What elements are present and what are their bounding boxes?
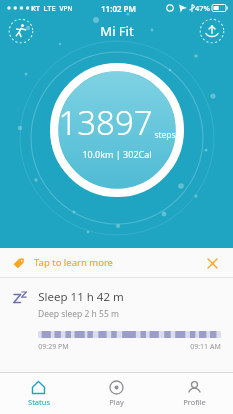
button[interactable]: Share xyxy=(199,18,225,44)
button[interactable]: Tap to learn more xyxy=(0,248,233,277)
button[interactable]: Start workout xyxy=(8,18,34,44)
button[interactable]: Sleep 11 h 42 m xyxy=(0,278,233,364)
staticText: 11:02 PM xyxy=(101,3,136,14)
staticText: Deep sleep 2 h 55 m xyxy=(38,308,119,320)
staticText: Tap to learn more xyxy=(34,256,113,269)
staticText: 13897 xyxy=(58,100,153,145)
button[interactable]: Play xyxy=(77,373,155,414)
staticText: LTE xyxy=(43,3,56,13)
staticText: steps xyxy=(154,129,176,141)
staticText: 09:29 PM xyxy=(38,342,69,352)
staticText: Profile xyxy=(183,397,206,407)
staticText: Sleep 11 h 42 m xyxy=(38,289,124,305)
button[interactable]: 13897 xyxy=(50,63,184,197)
staticText: 09:11 AM xyxy=(190,342,221,352)
staticText: Mi Fit xyxy=(100,22,134,40)
button[interactable]: Profile xyxy=(155,373,233,414)
staticText: VPN xyxy=(59,4,73,13)
button[interactable]: Dismiss xyxy=(203,254,221,272)
button[interactable]: Status xyxy=(0,373,77,414)
staticText: KT xyxy=(31,3,40,13)
staticText: Status xyxy=(28,397,50,407)
staticText: 47% xyxy=(195,3,210,13)
staticText: Play xyxy=(109,397,124,407)
staticText: 10.0km | 302Cal xyxy=(82,148,152,160)
